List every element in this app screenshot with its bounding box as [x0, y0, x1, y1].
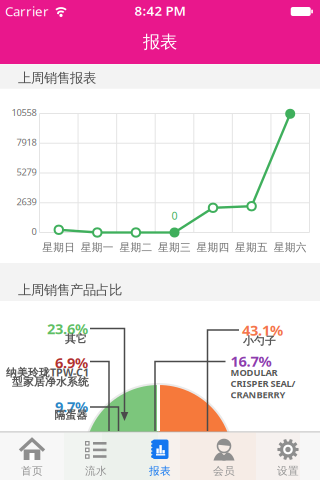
- staticText: 星期六: [274, 241, 307, 254]
- staticText: 2639: [16, 196, 36, 208]
- staticText: MODULAR: [230, 366, 277, 379]
- staticText: 7918: [16, 136, 36, 148]
- staticText: Carrier: [5, 2, 49, 20]
- staticText: 23.6%: [47, 319, 88, 338]
- staticText: 16.7%: [230, 351, 271, 371]
- staticText: CRANBERRY: [230, 388, 285, 401]
- staticText: 型家居净水系统: [12, 375, 89, 388]
- staticText: 8:42 PM: [134, 2, 185, 19]
- staticText: 星期一: [81, 241, 114, 254]
- staticText: 星期二: [119, 241, 152, 254]
- staticText: 星期日: [42, 241, 75, 254]
- staticText: 纳美玲珑TPW-C1: [6, 365, 89, 379]
- staticText: 上周销售产品占比: [18, 282, 122, 298]
- button[interactable]: 设置: [256, 431, 320, 480]
- staticText: 6.9%: [55, 353, 88, 372]
- staticText: 0: [171, 208, 177, 223]
- staticText: 小勺子: [243, 334, 276, 347]
- staticText: 流水: [85, 464, 107, 477]
- staticText: 会员: [213, 464, 235, 477]
- staticText: 9.7%: [55, 397, 88, 416]
- staticText: 0: [31, 225, 36, 238]
- staticText: 星期四: [196, 241, 229, 254]
- staticText: 首页: [21, 464, 43, 477]
- staticText: 其它: [65, 332, 87, 345]
- staticText: 设置: [277, 464, 299, 477]
- button[interactable]: 报表: [128, 431, 192, 480]
- staticText: CRISPER SEAL/: [230, 377, 295, 390]
- staticText: 隔蛋器: [54, 408, 87, 421]
- button[interactable]: 会员: [192, 431, 256, 480]
- staticText: 报表: [149, 464, 171, 477]
- staticText: 星期三: [158, 241, 191, 254]
- staticText: 5279: [16, 166, 36, 178]
- staticText: 43.1%: [242, 320, 283, 340]
- staticText: 10558: [11, 106, 36, 119]
- staticText: 报表: [143, 31, 177, 53]
- button[interactable]: 流水: [64, 431, 128, 480]
- button[interactable]: 首页: [0, 431, 64, 480]
- staticText: 上周销售报表: [18, 70, 96, 86]
- staticText: 星期五: [235, 241, 268, 254]
